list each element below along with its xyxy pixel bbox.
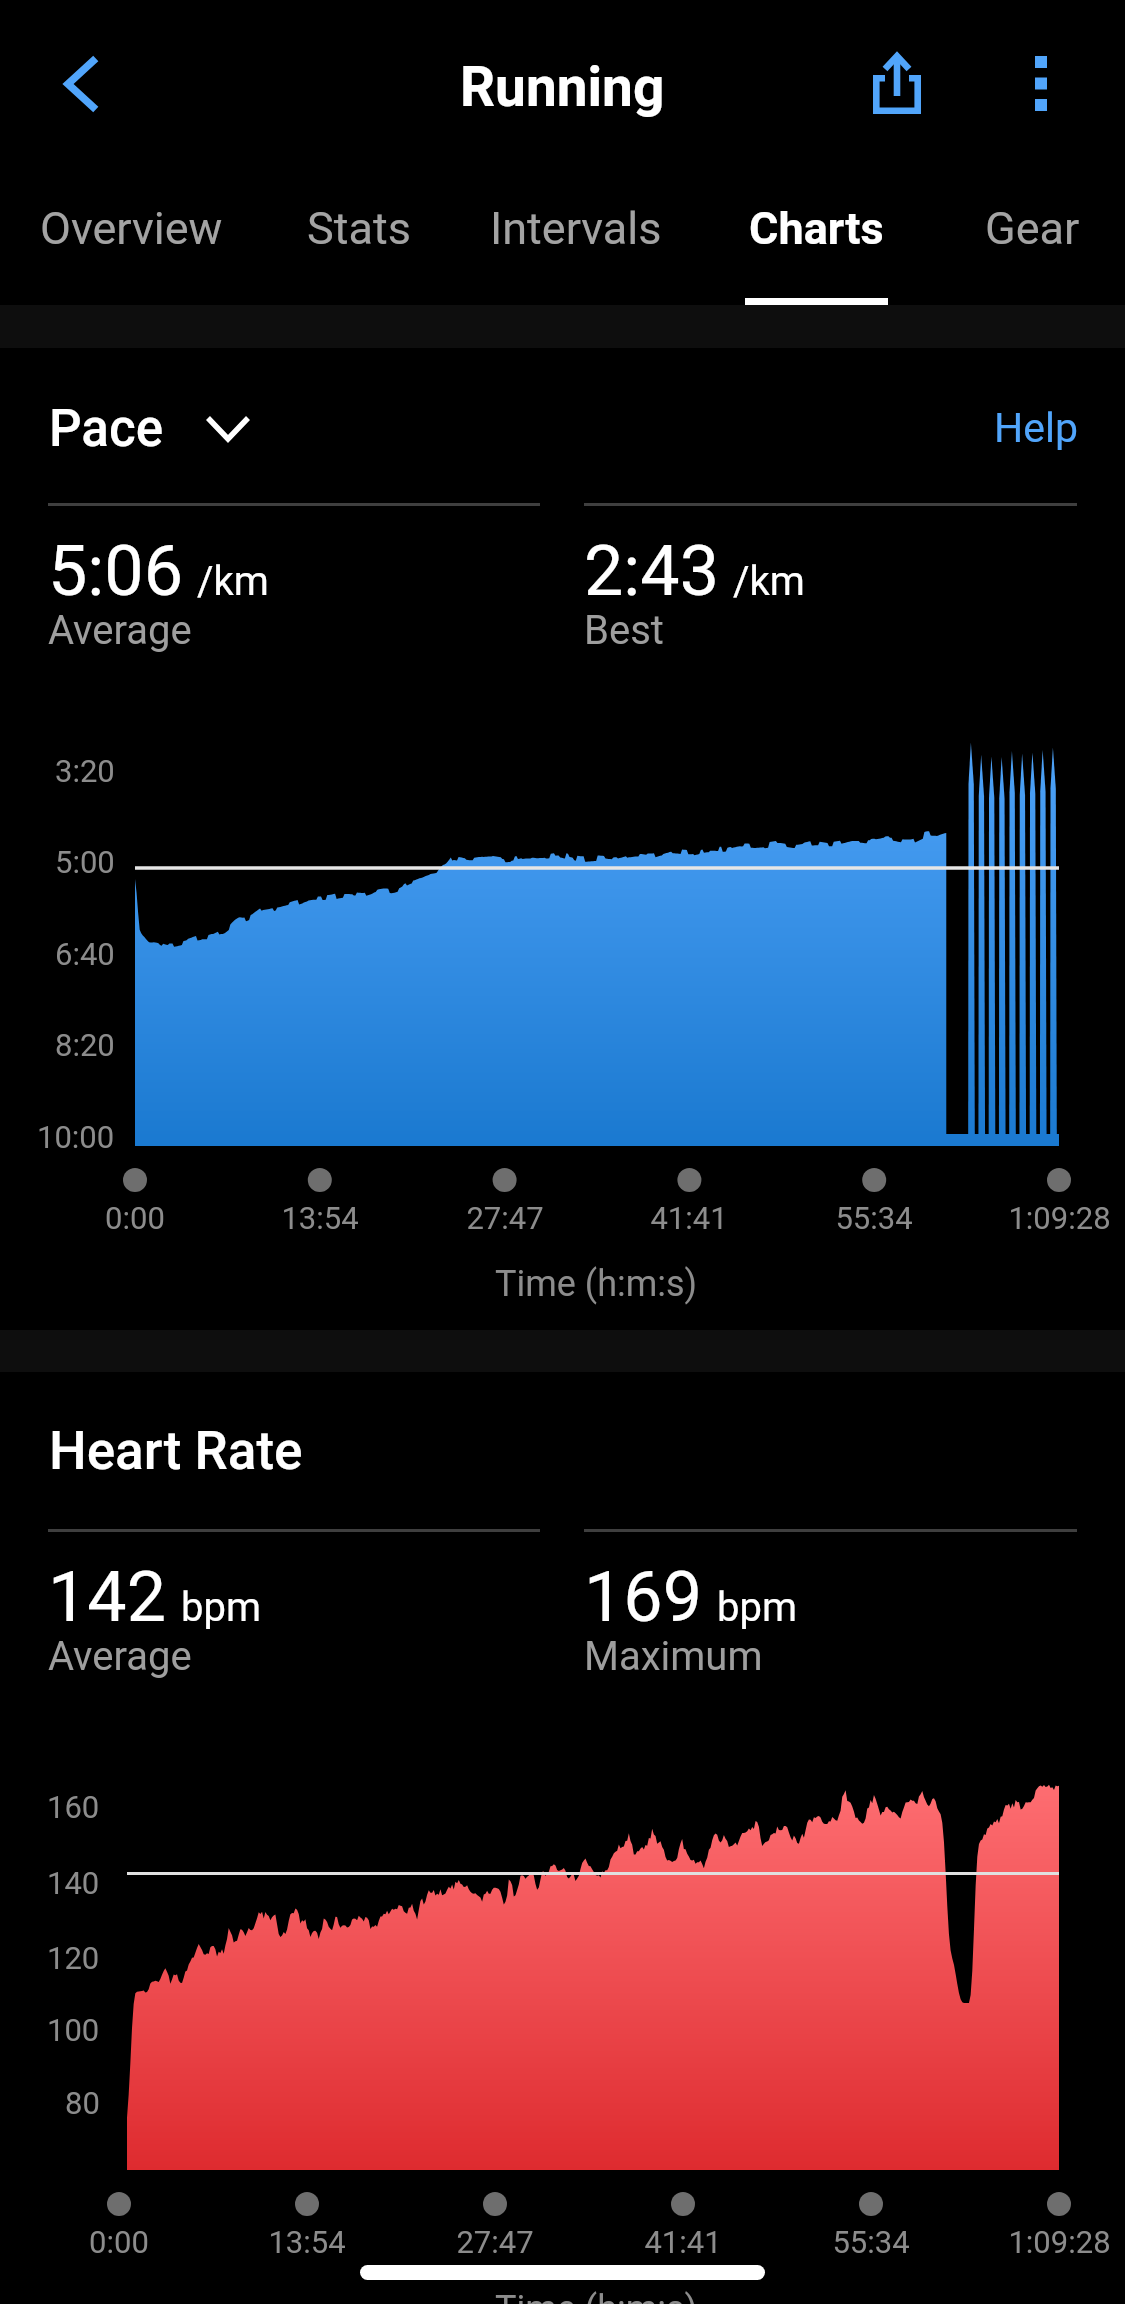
staticText: 2:43 (584, 530, 719, 612)
staticText: 5:00 (55, 844, 115, 880)
button[interactable]: Help (971, 384, 1101, 472)
staticText: 27:47 (466, 1200, 544, 1236)
button[interactable]: Back (24, 38, 116, 130)
button[interactable]: Charts (720, 180, 913, 305)
staticText: 142 (48, 1556, 167, 1638)
staticText: 169 (584, 1556, 703, 1638)
staticText: 120 (47, 1940, 100, 1976)
staticText: bpm (181, 1584, 261, 1631)
staticText: bpm (717, 1584, 797, 1631)
staticText: Time (h:m:s) (495, 2288, 698, 2304)
staticText: Best (584, 607, 664, 654)
staticText: Maximum (584, 1633, 763, 1680)
staticText: Running (460, 55, 665, 119)
staticText: 6:40 (55, 936, 115, 972)
button[interactable]: Stats (279, 180, 438, 305)
staticText: Gear (985, 202, 1080, 255)
staticText: Heart Rate (49, 1420, 303, 1482)
staticText: 13:54 (268, 2224, 346, 2260)
staticText: 55:34 (832, 2224, 910, 2260)
staticText: 160 (47, 1789, 100, 1825)
staticText: Average (48, 607, 192, 654)
staticText: /km (733, 558, 805, 605)
staticText: Pace (49, 399, 164, 459)
staticText: Overview (40, 202, 223, 255)
staticText: Average (48, 1633, 192, 1680)
staticText: 140 (47, 1865, 100, 1901)
staticText: Intervals (490, 202, 662, 255)
staticText: 0:00 (105, 1200, 165, 1236)
staticText: 8:20 (55, 1027, 115, 1063)
staticText: Charts (749, 202, 884, 255)
button[interactable]: Intervals (458, 180, 693, 305)
staticText: 3:20 (55, 753, 115, 789)
staticText: 0:00 (89, 2224, 149, 2260)
staticText: 5:06 (48, 530, 183, 612)
staticText: 100 (47, 2012, 100, 2048)
staticText: 55:34 (835, 1200, 913, 1236)
staticText: 10:00 (37, 1119, 115, 1155)
staticText: Time (h:m:s) (495, 1263, 698, 1305)
staticText: /km (197, 558, 269, 605)
staticText: 13:54 (281, 1200, 359, 1236)
button[interactable]: Gear (957, 180, 1107, 305)
button[interactable]: Pace (30, 382, 270, 470)
staticText: 27:47 (456, 2224, 534, 2260)
button[interactable]: Overview (8, 180, 254, 305)
button[interactable]: More options (993, 37, 1089, 133)
staticText: Stats (307, 202, 411, 255)
staticText: 1:09:28 (1008, 2224, 1111, 2260)
staticText: 41:41 (644, 2224, 722, 2260)
staticText: 41:41 (650, 1200, 728, 1236)
button[interactable]: Share (849, 37, 945, 133)
staticText: 1:09:28 (1008, 1200, 1111, 1236)
staticText: 80 (65, 2085, 100, 2121)
staticText: Help (994, 404, 1078, 452)
